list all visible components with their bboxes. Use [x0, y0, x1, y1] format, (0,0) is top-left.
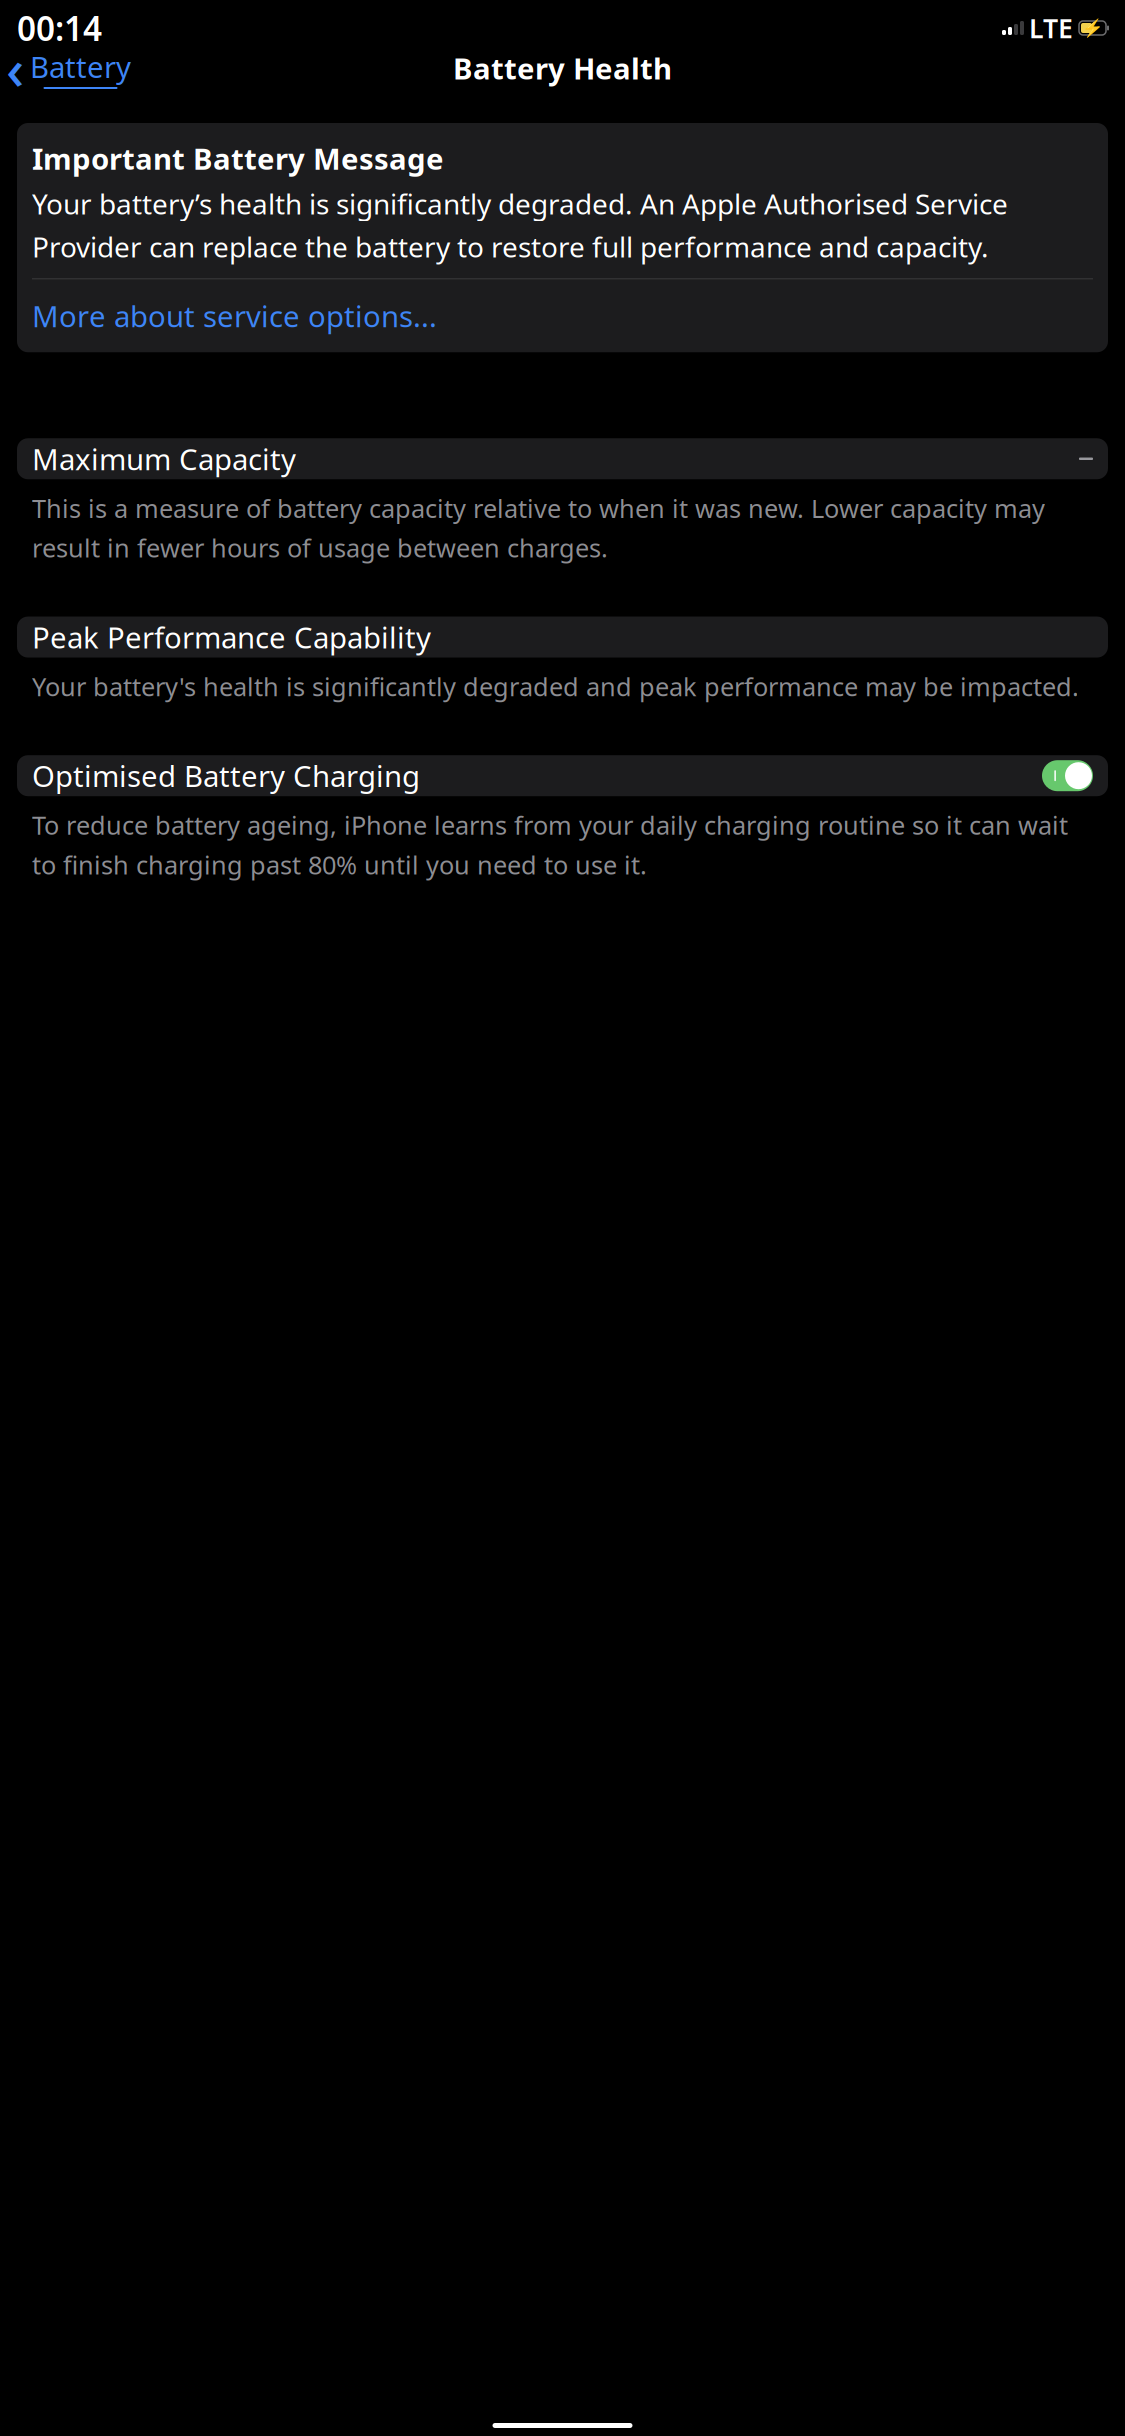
staticText: Peak Performance Capability — [32, 618, 431, 657]
staticText: Optimised Battery Charging — [32, 756, 420, 795]
button[interactable]: More about service options... — [32, 279, 1093, 352]
staticText: More about service options... — [32, 296, 437, 335]
staticText: Maximum Capacity — [32, 439, 296, 478]
button[interactable]: Optimised Battery Charging — [1042, 760, 1093, 791]
staticText: Battery Health — [453, 48, 672, 87]
staticText: Battery — [30, 47, 131, 86]
staticText: ⚡ — [1081, 18, 1103, 38]
staticText: Your battery’s health is significantly d… — [32, 185, 1008, 265]
button[interactable]: Peak Performance Capability — [17, 617, 1108, 658]
staticText: LTE — [1029, 10, 1073, 46]
staticText: ‹ — [6, 31, 24, 105]
staticText: 00:14 — [17, 6, 102, 50]
button[interactable]: Maximum Capacity — [17, 438, 1108, 479]
staticText: This is a measure of battery capacity re… — [32, 491, 1045, 565]
staticText: To reduce battery ageing, iPhone learns … — [32, 808, 1068, 881]
staticText: Important Battery Message — [32, 139, 444, 178]
button[interactable]: ‹ — [0, 27, 131, 109]
staticText: Your battery's health is significantly d… — [32, 670, 1079, 703]
